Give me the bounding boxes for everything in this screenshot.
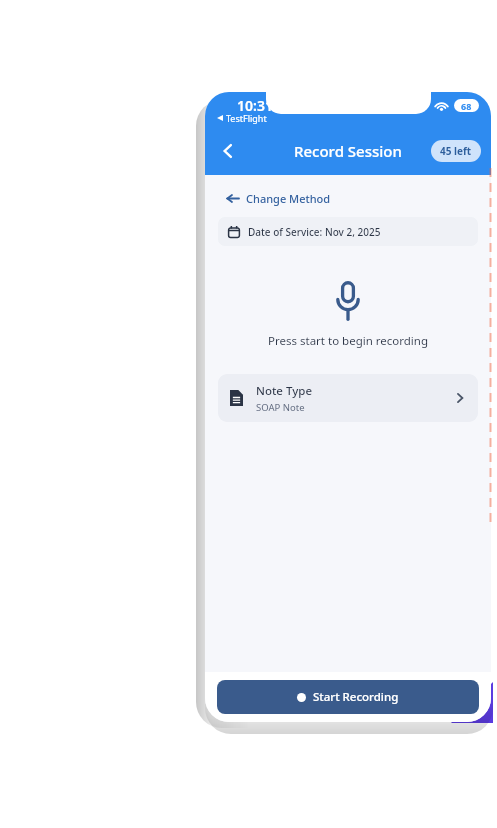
button[interactable]: Note Type — [218, 374, 478, 422]
staticText: Date of Service: Nov 2, 2025 — [248, 225, 381, 239]
staticText: 45 left — [440, 144, 472, 158]
button[interactable]: Date of Service: Nov 2, 2025 — [218, 217, 478, 246]
staticText: Note Type — [256, 383, 312, 399]
staticText: Start Recording — [313, 689, 399, 705]
staticText: 10:31 — [237, 96, 273, 115]
staticText: SOAP Note — [256, 401, 305, 414]
staticText: Change Method — [246, 191, 331, 206]
button[interactable]: Start Recording — [217, 680, 479, 714]
button[interactable]: Change Method — [221, 186, 336, 211]
button[interactable]: 45 left — [431, 140, 481, 162]
staticText: Press start to begin recording — [268, 333, 428, 349]
staticText: Record Session — [294, 141, 402, 161]
button[interactable]: Back — [210, 133, 246, 169]
staticText: 68 — [461, 100, 472, 112]
staticText: TestFlight — [226, 112, 267, 124]
